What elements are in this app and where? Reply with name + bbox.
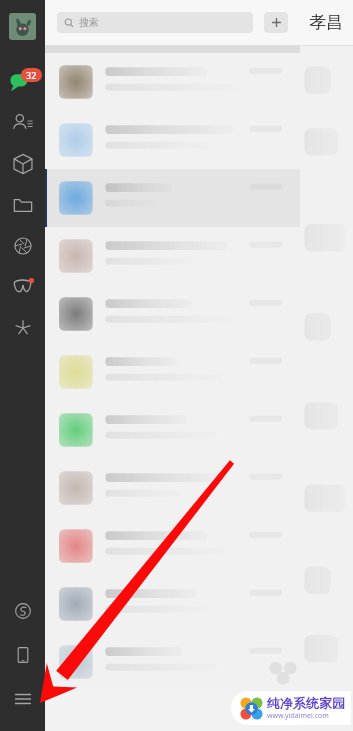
staticText: 搜索 bbox=[79, 16, 99, 29]
button[interactable]: More bbox=[7, 683, 39, 715]
button[interactable]: Channels bbox=[7, 271, 39, 303]
staticText: www.yidaimei.com bbox=[267, 711, 329, 721]
button[interactable] bbox=[45, 459, 300, 517]
button[interactable] bbox=[45, 517, 300, 575]
staticText: 纯净系统家园 bbox=[267, 695, 345, 711]
button[interactable]: 搜索 bbox=[57, 12, 253, 33]
button[interactable] bbox=[45, 227, 300, 285]
button[interactable] bbox=[45, 401, 300, 459]
button[interactable] bbox=[45, 169, 300, 227]
button[interactable]: Files bbox=[7, 189, 39, 221]
button[interactable]: Phone bbox=[7, 639, 39, 671]
staticText: 32 bbox=[26, 69, 37, 81]
button[interactable]: Moments bbox=[7, 230, 39, 262]
button[interactable] bbox=[45, 343, 300, 401]
button[interactable]: Profile bbox=[9, 13, 36, 40]
button[interactable] bbox=[45, 575, 300, 633]
button[interactable]: New chat bbox=[264, 12, 288, 33]
button[interactable]: Top Stories bbox=[7, 312, 39, 344]
staticText: 孝昌 bbox=[309, 12, 343, 33]
button[interactable]: Mini Programs bbox=[7, 148, 39, 180]
button[interactable]: Contacts bbox=[7, 107, 39, 139]
button[interactable] bbox=[45, 53, 300, 111]
button[interactable] bbox=[45, 111, 300, 169]
button[interactable]: Chats bbox=[6, 64, 40, 98]
button[interactable] bbox=[45, 285, 300, 343]
button[interactable]: Mini Program Panel bbox=[7, 595, 39, 627]
button[interactable] bbox=[45, 633, 300, 691]
